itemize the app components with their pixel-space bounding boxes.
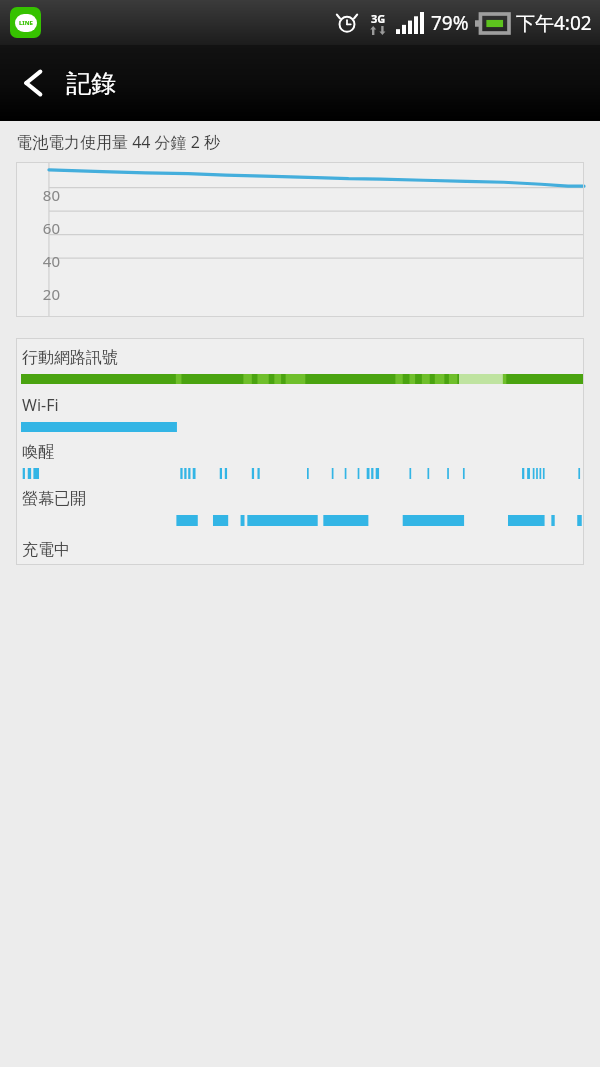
button[interactable]: 80 [16,162,584,317]
staticText: LINE [19,19,33,27]
staticText: 20 [16,284,60,304]
staticText: 行動網路訊號 [22,348,118,368]
staticText: 79% [431,10,469,36]
staticText: 記錄 [66,68,116,99]
staticText: 下午4:02 [516,10,592,36]
staticText: Wi-Fi [22,394,59,416]
staticText: 80 [16,185,60,205]
staticText: 喚醒 [22,442,54,462]
staticText: 電池電力使用量 44 分鐘 2 秒 [16,131,221,153]
staticText: 3G [371,11,386,26]
staticText: 40 [16,251,60,271]
staticText: 螢幕已開 [22,489,86,509]
staticText: 60 [16,218,60,238]
button[interactable]: Back [0,45,66,121]
staticText: 充電中 [22,540,70,560]
button[interactable]: 行動網路訊號 [16,338,584,565]
